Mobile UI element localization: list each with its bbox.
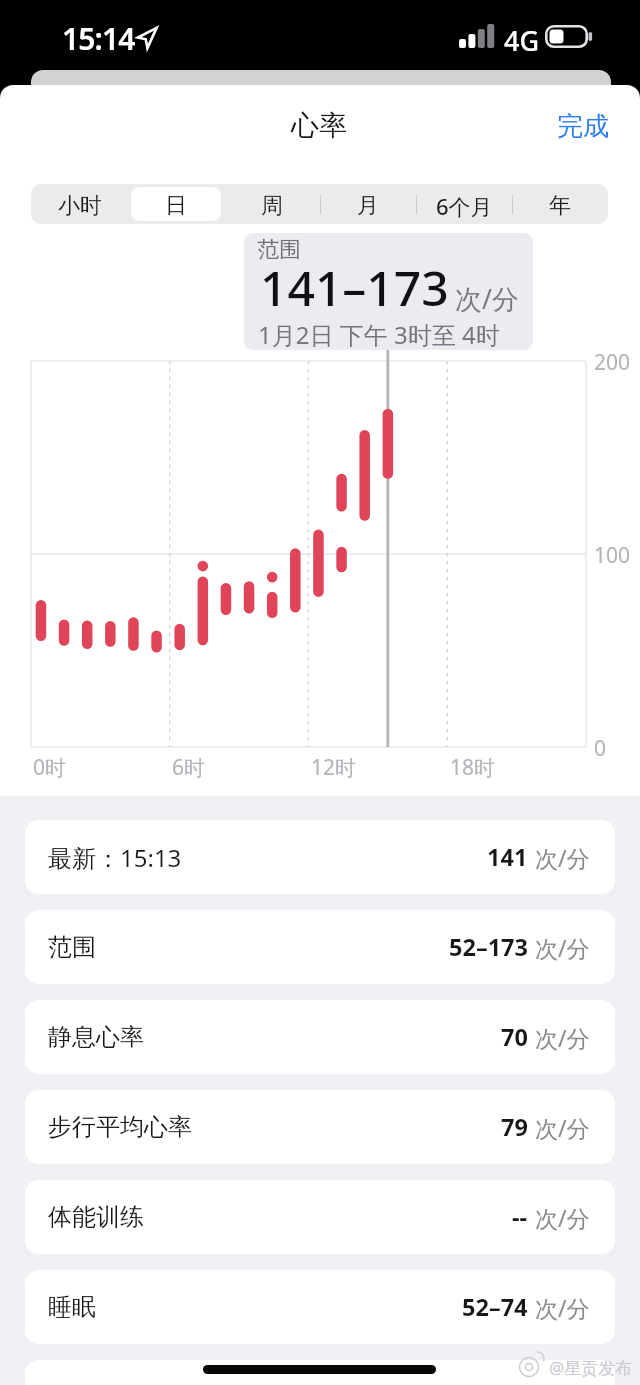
- staticText: 次/分: [535, 932, 590, 963]
- staticText: 6时: [172, 753, 206, 782]
- staticText: 次/分: [535, 1292, 590, 1323]
- staticText: 步行平均心率: [48, 1112, 192, 1142]
- staticText: 141: [487, 841, 528, 873]
- staticText: 范围: [257, 236, 301, 264]
- button[interactable]: 静息心率: [25, 1000, 615, 1074]
- staticText: 12时: [311, 753, 357, 782]
- staticText: 周: [261, 192, 283, 220]
- button[interactable]: 周: [224, 184, 320, 224]
- staticText: 次/分: [535, 1022, 590, 1053]
- staticText: 141–173: [260, 255, 449, 320]
- staticText: 睡眠: [48, 1292, 96, 1322]
- staticText: 次/分: [455, 280, 520, 317]
- staticText: 次/分: [535, 1112, 590, 1143]
- button[interactable]: 6个月: [416, 184, 512, 224]
- staticText: 4G: [504, 22, 540, 59]
- staticText: 次/分: [535, 842, 590, 873]
- staticText: 0: [594, 734, 607, 763]
- staticText: 18时: [450, 753, 496, 782]
- staticText: 完成: [557, 110, 609, 140]
- button[interactable]: 最新：15:13: [25, 820, 615, 894]
- staticText: 0时: [33, 753, 67, 782]
- staticText: 6个月: [436, 191, 493, 221]
- staticText: 小时: [58, 192, 102, 220]
- staticText: 70: [501, 1021, 528, 1053]
- button[interactable]: [25, 1360, 615, 1385]
- button[interactable]: 完成: [531, 88, 640, 148]
- staticText: 52–74: [462, 1291, 528, 1323]
- staticText: 100: [594, 541, 631, 570]
- staticText: 月: [357, 192, 379, 220]
- staticText: 心率: [291, 108, 347, 143]
- staticText: 日: [165, 192, 187, 220]
- button[interactable]: 步行平均心率: [25, 1090, 615, 1164]
- staticText: 次/分: [535, 1202, 590, 1233]
- staticText: 1月2日 下午 3时至 4时: [258, 318, 500, 350]
- button[interactable]: 睡眠: [25, 1270, 615, 1344]
- staticText: --: [512, 1201, 528, 1233]
- staticText: 79: [501, 1111, 528, 1143]
- button[interactable]: 日: [128, 184, 224, 224]
- staticText: 静息心率: [48, 1022, 144, 1052]
- staticText: 52–173: [449, 931, 528, 963]
- staticText: 200: [594, 348, 631, 377]
- button[interactable]: 范围: [25, 910, 615, 984]
- button[interactable]: 小时: [31, 184, 128, 224]
- staticText: 最新：15:13: [48, 841, 182, 874]
- staticText: 15:14: [62, 18, 135, 59]
- staticText: 体能训练: [48, 1202, 144, 1232]
- button[interactable]: 年: [512, 184, 608, 224]
- button[interactable]: 体能训练: [25, 1180, 615, 1254]
- staticText: 范围: [48, 932, 96, 962]
- staticText: @星贡发布: [549, 1356, 633, 1379]
- button[interactable]: 月: [320, 184, 416, 224]
- staticText: 年: [549, 192, 571, 220]
